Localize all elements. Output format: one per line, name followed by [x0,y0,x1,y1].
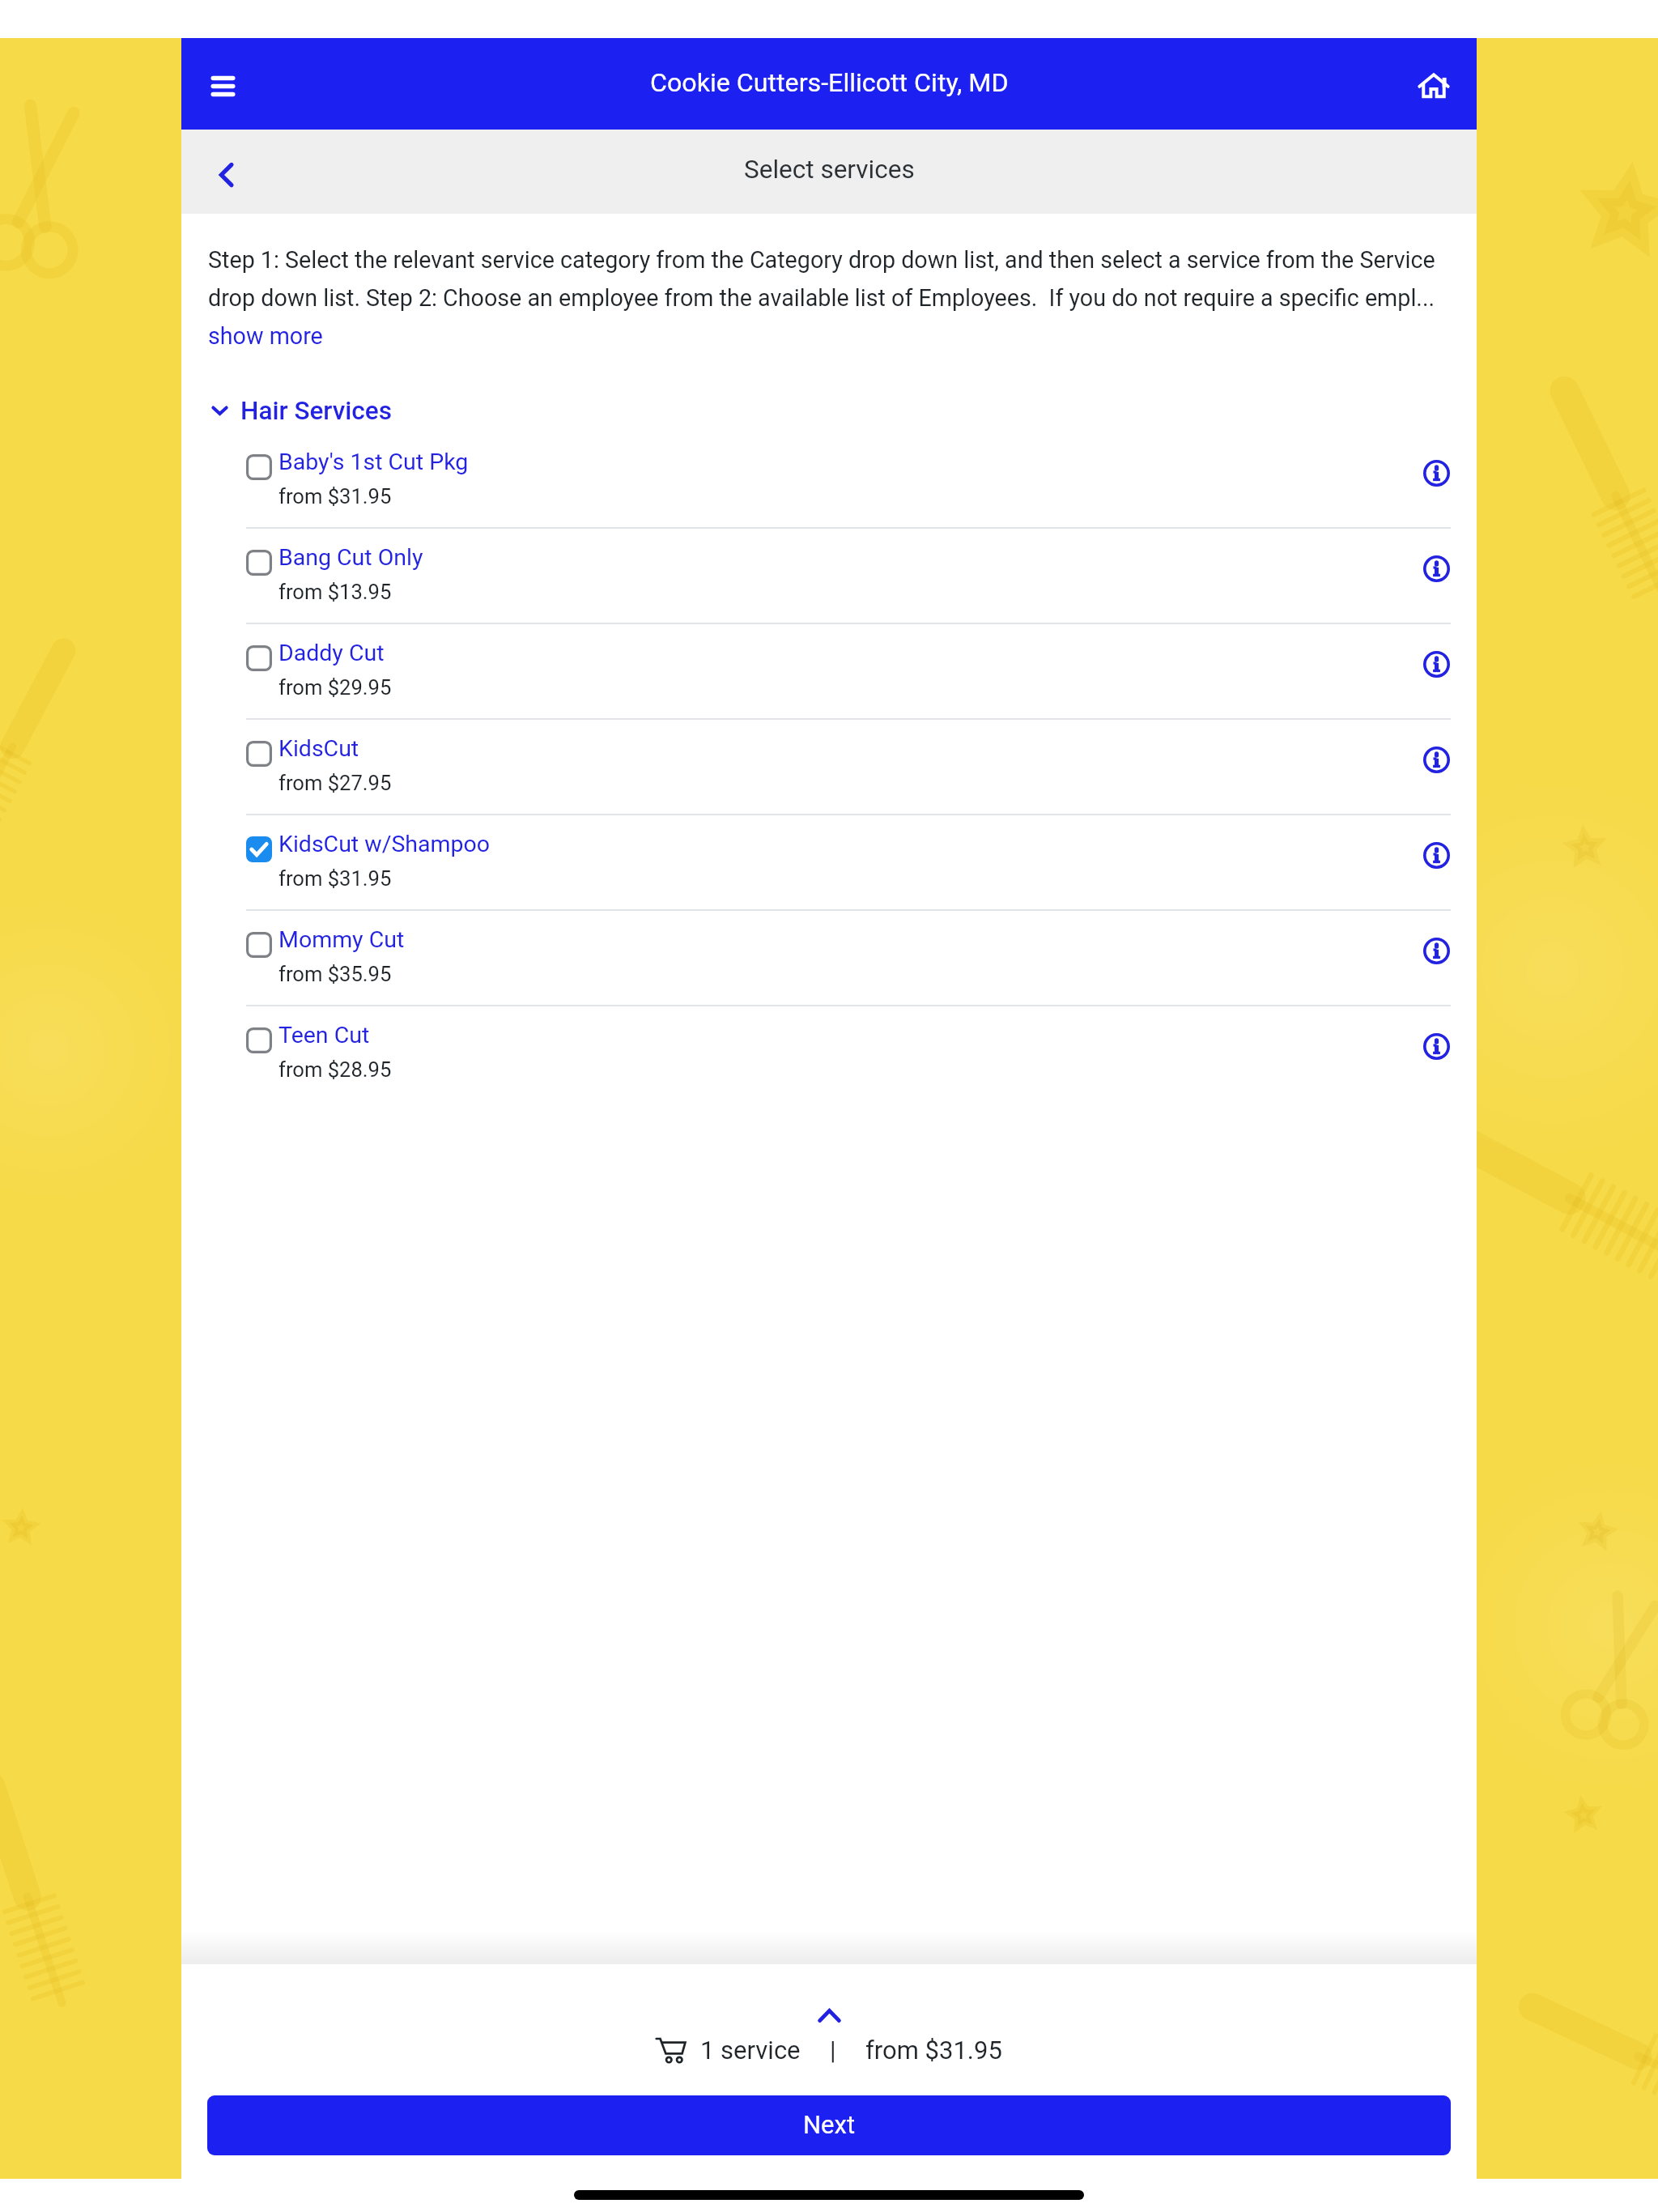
button[interactable]: Hair Services [181,388,1477,433]
button[interactable]: Service info [1412,449,1460,497]
staticText: from $13.95 [278,575,392,606]
button[interactable]: Next [207,2095,1451,2155]
staticText: from $28.95 [278,1053,392,1083]
staticText: Step 1: Select the relevant service cate… [208,238,1450,314]
staticText: Baby's 1st Cut Pkg [278,444,469,476]
staticText: Hair Services [240,396,393,426]
staticText: KidsCut w/Shampoo [278,826,491,858]
staticText: | [830,2035,836,2065]
button[interactable]: Back [201,130,251,214]
button[interactable]: Service info [1412,926,1460,975]
staticText: Bang Cut Only [278,539,423,572]
staticText: from $35.95 [278,957,392,988]
button[interactable]: Daddy Cut [181,624,1477,718]
staticText: from $31.95 [865,2035,1002,2065]
staticText: Daddy Cut [278,635,385,667]
button[interactable]: Teen Cut [181,1006,1477,1100]
button[interactable]: Menu [198,38,248,130]
staticText: from $31.95 [278,479,392,510]
button[interactable]: Service info [1412,1022,1460,1070]
button[interactable]: show more [208,314,323,352]
staticText: from $27.95 [278,766,392,797]
button[interactable]: KidsCut w/Shampoo [181,815,1477,909]
staticText: KidsCut [278,730,359,763]
button[interactable]: Service info [1412,544,1460,593]
staticText: 1 service [700,2035,801,2065]
button[interactable]: Collapse summary [181,2004,1477,2027]
button[interactable]: Bang Cut Only [181,529,1477,623]
button[interactable]: Baby's 1st Cut Pkg [181,433,1477,527]
staticText: Select services [744,155,915,185]
button[interactable]: Service info [1412,735,1460,784]
staticText: Cookie Cutters-Ellicott City, MD [650,67,1009,98]
button[interactable]: Service info [1412,831,1460,879]
staticText: Mommy Cut [278,921,405,954]
button[interactable]: Service info [1412,640,1460,688]
staticText: show more [208,314,323,352]
button[interactable]: Mommy Cut [181,911,1477,1005]
button[interactable]: KidsCut [181,720,1477,814]
staticText: from $31.95 [278,861,392,892]
staticText: Next [803,2110,856,2139]
button[interactable]: Home [1404,38,1464,130]
staticText: from $29.95 [278,670,392,701]
staticText: Teen Cut [278,1017,370,1049]
